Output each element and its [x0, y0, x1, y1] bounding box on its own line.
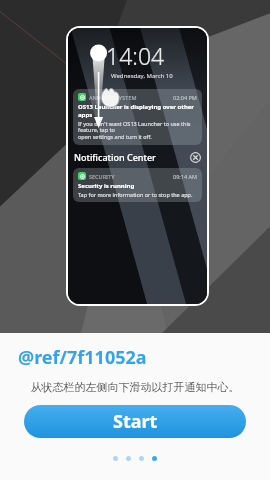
- staticText: @ref/7f11052a: [18, 345, 147, 370]
- staticText: If you don't want OS13 Launcher to use t…: [78, 120, 197, 141]
- staticText: 09:14 AM: [173, 173, 197, 180]
- button[interactable]: SECURITY: [73, 168, 202, 202]
- staticText: Wednesday, March 10: [111, 72, 173, 80]
- button[interactable]: Clear notifications: [190, 152, 201, 163]
- staticText: OS13 Launcher is displaying over other a…: [78, 103, 197, 119]
- staticText: Tap for more information or to stop the …: [78, 191, 193, 198]
- staticText: Notification Center: [74, 151, 156, 163]
- button[interactable]: Start: [24, 405, 246, 438]
- staticText: Start: [113, 409, 158, 434]
- staticText: ANDROID SYSTEM: [89, 94, 137, 101]
- staticText: SECURITY: [89, 173, 115, 180]
- staticText: 从状态栏的左侧向下滑动以打开通知中心。: [16, 380, 254, 394]
- staticText: 14:04: [106, 40, 165, 71]
- button[interactable]: ANDROID SYSTEM: [73, 89, 202, 145]
- staticText: 02:04 PM: [173, 94, 197, 101]
- staticText: Security is running: [78, 182, 135, 190]
